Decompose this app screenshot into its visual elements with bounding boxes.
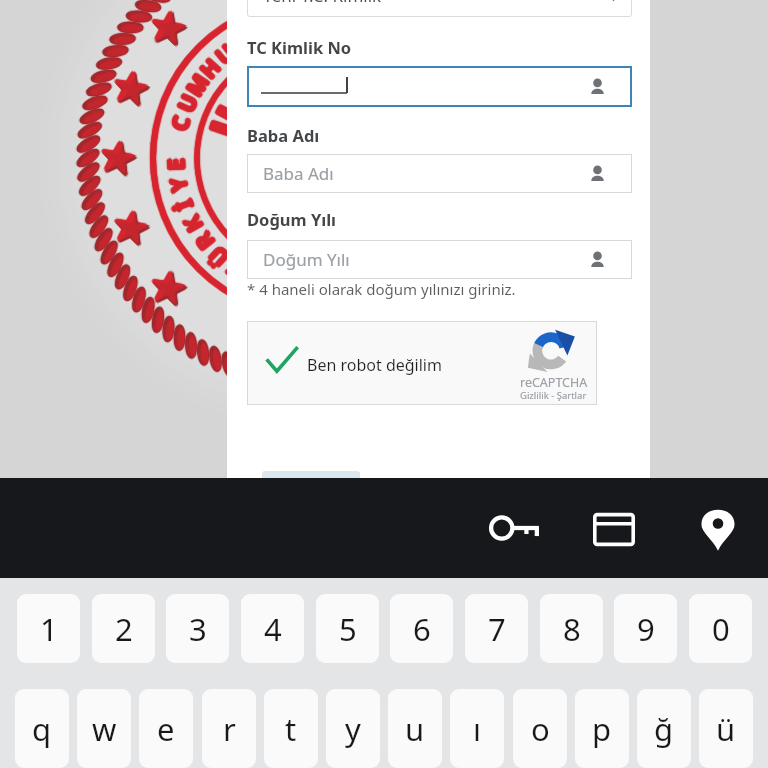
button[interactable]: p bbox=[575, 689, 629, 768]
staticText: 7 bbox=[488, 608, 506, 650]
staticText: ı bbox=[473, 708, 481, 750]
staticText: 2 bbox=[115, 608, 133, 650]
button[interactable]: Ben robot değilim bbox=[247, 321, 597, 405]
button[interactable]: 1 bbox=[17, 594, 80, 663]
staticText: y bbox=[345, 708, 361, 750]
staticText: 8 bbox=[563, 608, 581, 650]
button[interactable]: e bbox=[139, 689, 193, 768]
button[interactable]: Addresses bbox=[692, 504, 744, 556]
staticText: Doğum Yılı bbox=[247, 208, 337, 230]
button[interactable]: ü bbox=[699, 689, 753, 768]
staticText: o bbox=[531, 708, 550, 750]
staticText: ü bbox=[716, 708, 736, 750]
button[interactable]: y bbox=[326, 689, 380, 768]
button[interactable]: 2 bbox=[92, 594, 155, 663]
staticText: reCAPTCHA bbox=[520, 374, 588, 391]
button[interactable]: 4 bbox=[241, 594, 304, 663]
button[interactable]: 5 bbox=[316, 594, 379, 663]
button[interactable]: Baba Adı bbox=[247, 154, 632, 193]
staticText: Gizlilik - Şartlar bbox=[520, 389, 587, 402]
staticText: Baba Adı bbox=[247, 124, 320, 146]
staticText: Doğum Yılı bbox=[263, 248, 350, 271]
button[interactable]: u bbox=[388, 689, 442, 768]
staticText: ğ bbox=[654, 708, 674, 750]
button[interactable]: 3 bbox=[166, 594, 229, 663]
staticText: 0 bbox=[712, 608, 730, 650]
staticText: q bbox=[32, 708, 52, 750]
staticText: r bbox=[223, 708, 236, 750]
staticText: p bbox=[592, 708, 612, 750]
button[interactable]: Yeni T.C. Kimlik bbox=[247, 0, 632, 17]
staticText: * 4 haneli olarak doğum yılınızı giriniz… bbox=[247, 279, 516, 299]
staticText: w bbox=[92, 708, 117, 750]
staticText: u bbox=[405, 708, 425, 750]
button[interactable] bbox=[262, 471, 360, 481]
staticText: Yeni T.C. Kimlik bbox=[263, 0, 382, 7]
button[interactable]: ı bbox=[450, 689, 504, 768]
button[interactable]: 9 bbox=[614, 594, 677, 663]
button[interactable]: Doğum Yılı bbox=[247, 240, 632, 279]
button[interactable]: w bbox=[77, 689, 131, 768]
button[interactable] bbox=[247, 66, 632, 107]
button[interactable]: ğ bbox=[637, 689, 691, 768]
staticText: 4 bbox=[264, 608, 282, 650]
button[interactable]: Passwords bbox=[489, 502, 541, 554]
button[interactable]: t bbox=[264, 689, 318, 768]
staticText: e bbox=[157, 708, 175, 750]
button[interactable]: r bbox=[202, 689, 256, 768]
button[interactable]: q bbox=[15, 689, 69, 768]
staticText: t bbox=[285, 708, 297, 750]
button[interactable]: 0 bbox=[689, 594, 752, 663]
staticText: 6 bbox=[413, 608, 431, 650]
button[interactable]: 7 bbox=[465, 594, 528, 663]
button[interactable]: o bbox=[513, 689, 567, 768]
staticText: TC Kimlik No bbox=[247, 36, 352, 58]
button[interactable]: Payment methods bbox=[588, 504, 640, 556]
staticText: Baba Adı bbox=[263, 162, 334, 185]
button[interactable]: 6 bbox=[390, 594, 453, 663]
staticText: 9 bbox=[637, 608, 655, 650]
staticText: Ben robot değilim bbox=[307, 354, 442, 376]
staticText: 5 bbox=[339, 608, 357, 650]
button[interactable]: 8 bbox=[540, 594, 603, 663]
staticText: 1 bbox=[40, 608, 58, 650]
staticText: 3 bbox=[189, 608, 207, 650]
